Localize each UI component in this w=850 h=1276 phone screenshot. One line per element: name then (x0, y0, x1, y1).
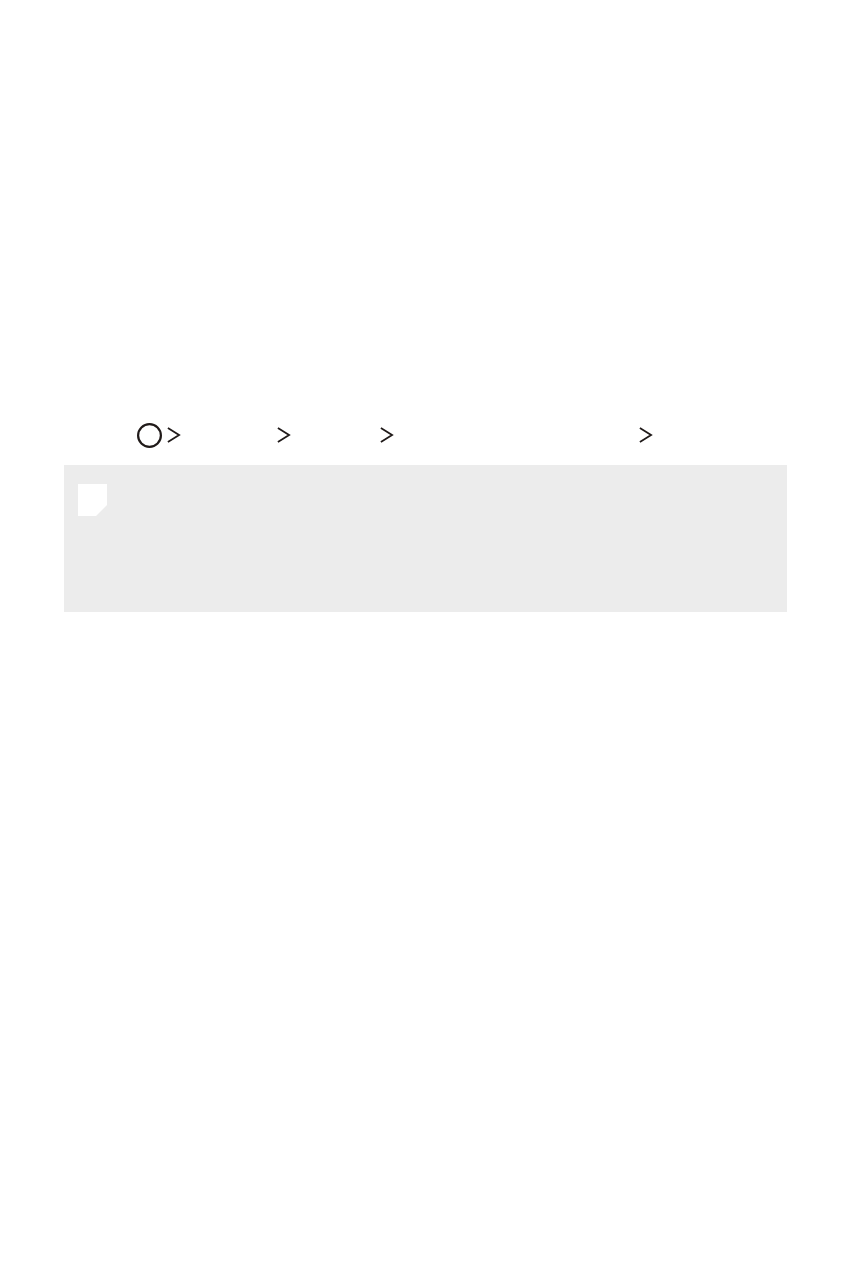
other: Document (78, 484, 107, 516)
button[interactable]: Home (137, 423, 162, 448)
